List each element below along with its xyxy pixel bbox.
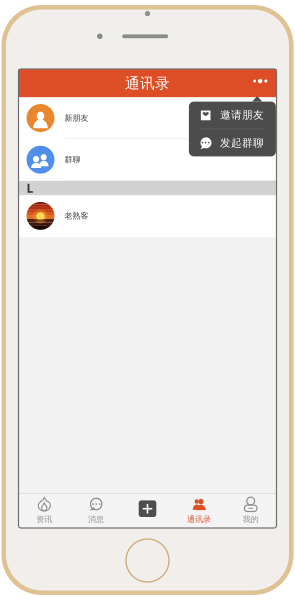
- staticText: 邀请朋友: [220, 108, 264, 121]
- button[interactable]: 新朋友: [18, 97, 276, 139]
- staticText: 消息: [88, 514, 104, 524]
- button[interactable]: 邀请朋友: [189, 101, 276, 129]
- staticText: 我的: [243, 514, 259, 524]
- button[interactable]: 群聊: [18, 139, 276, 181]
- staticText: 新朋友: [64, 113, 88, 123]
- staticText: 发起群聊: [220, 136, 264, 150]
- staticText: 群聊: [64, 155, 80, 165]
- button[interactable]: 资讯: [18, 494, 70, 528]
- button[interactable]: [122, 494, 173, 528]
- button[interactable]: More options: [246, 70, 274, 96]
- button[interactable]: 消息: [70, 494, 122, 528]
- button[interactable]: 通讯录: [173, 494, 225, 528]
- staticText: 老熟客: [64, 211, 88, 221]
- staticText: 资讯: [36, 514, 52, 524]
- button[interactable]: 我的: [225, 494, 276, 528]
- staticText: 通讯录: [125, 74, 170, 92]
- button[interactable]: Home: [126, 539, 169, 582]
- staticText: 通讯录: [187, 514, 211, 524]
- staticText: L: [26, 180, 33, 196]
- button[interactable]: 发起群聊: [189, 129, 276, 157]
- button[interactable]: 老熟客: [18, 195, 276, 237]
